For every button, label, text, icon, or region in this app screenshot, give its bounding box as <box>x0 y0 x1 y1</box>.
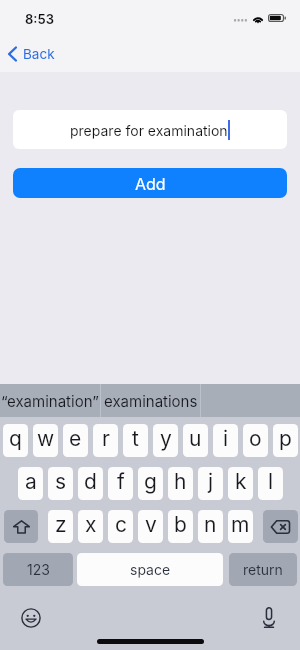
button[interactable]: o <box>243 424 268 457</box>
button[interactable]: r <box>93 424 118 457</box>
button[interactable]: Dictation <box>256 605 281 630</box>
button[interactable]: m <box>228 510 253 543</box>
staticText: k <box>235 469 247 494</box>
staticText: c <box>115 512 127 537</box>
staticText: space <box>130 561 171 578</box>
button[interactable]: e <box>63 424 88 457</box>
staticText: Back <box>23 46 55 62</box>
staticText: d <box>84 469 97 494</box>
staticText: Add <box>135 174 166 193</box>
button[interactable]: z <box>48 510 73 543</box>
staticText: y <box>160 426 172 451</box>
button[interactable]: f <box>108 467 133 500</box>
button[interactable]: Add <box>13 168 287 198</box>
button[interactable]: y <box>153 424 178 457</box>
staticText: u <box>189 426 202 451</box>
button[interactable]: s <box>48 467 73 500</box>
button[interactable]: x <box>78 510 103 543</box>
button[interactable]: l <box>258 467 283 500</box>
button[interactable]: return <box>229 553 297 586</box>
staticText: m <box>231 512 250 537</box>
button[interactable]: n <box>198 510 223 543</box>
staticText: r <box>102 426 110 451</box>
staticText: b <box>174 512 187 537</box>
staticText: j <box>208 469 214 494</box>
button[interactable]: d <box>78 467 103 500</box>
staticText: i <box>223 426 229 451</box>
staticText: f <box>117 469 125 494</box>
button[interactable]: q <box>3 424 28 457</box>
button[interactable]: g <box>138 467 163 500</box>
staticText: h <box>174 469 187 494</box>
button[interactable]: b <box>168 510 193 543</box>
staticText: l <box>268 469 274 494</box>
staticText: 8:53 <box>25 11 54 27</box>
staticText: e <box>69 426 82 451</box>
staticText: examinations <box>104 392 198 410</box>
button[interactable]: w <box>33 424 58 457</box>
staticText: prepare for examination <box>70 122 228 139</box>
button[interactable]: Back <box>8 46 55 62</box>
staticText: s <box>55 469 67 494</box>
staticText: g <box>144 469 157 494</box>
staticText: q <box>9 426 22 451</box>
staticText: x <box>85 512 97 537</box>
button[interactable]: t <box>123 424 148 457</box>
button[interactable]: j <box>198 467 223 500</box>
button[interactable]: 123 <box>3 553 73 586</box>
button[interactable]: p <box>273 424 298 457</box>
button[interactable]: Shift <box>4 510 38 543</box>
staticText: v <box>145 512 157 537</box>
staticText: o <box>249 426 262 451</box>
button[interactable]: examinations <box>101 384 200 417</box>
button[interactable]: a <box>18 467 43 500</box>
button[interactable]: space <box>77 553 223 586</box>
staticText: p <box>279 426 292 451</box>
staticText: z <box>55 512 67 537</box>
button[interactable]: Backspace <box>263 510 298 543</box>
staticText: return <box>243 561 283 578</box>
button[interactable]: u <box>183 424 208 457</box>
button[interactable]: i <box>213 424 238 457</box>
staticText: 123 <box>27 561 50 578</box>
button[interactable]: prepare for examination <box>13 110 287 149</box>
button[interactable]: Emoji keyboard <box>18 605 43 630</box>
button[interactable]: k <box>228 467 253 500</box>
button[interactable]: h <box>168 467 193 500</box>
staticText: t <box>132 426 139 451</box>
staticText: a <box>25 469 37 494</box>
button[interactable]: c <box>108 510 133 543</box>
button[interactable]: v <box>138 510 163 543</box>
staticText: w <box>37 426 55 451</box>
button[interactable]: “examination” <box>0 384 100 417</box>
staticText: “examination” <box>1 392 99 410</box>
staticText: n <box>204 512 217 537</box>
